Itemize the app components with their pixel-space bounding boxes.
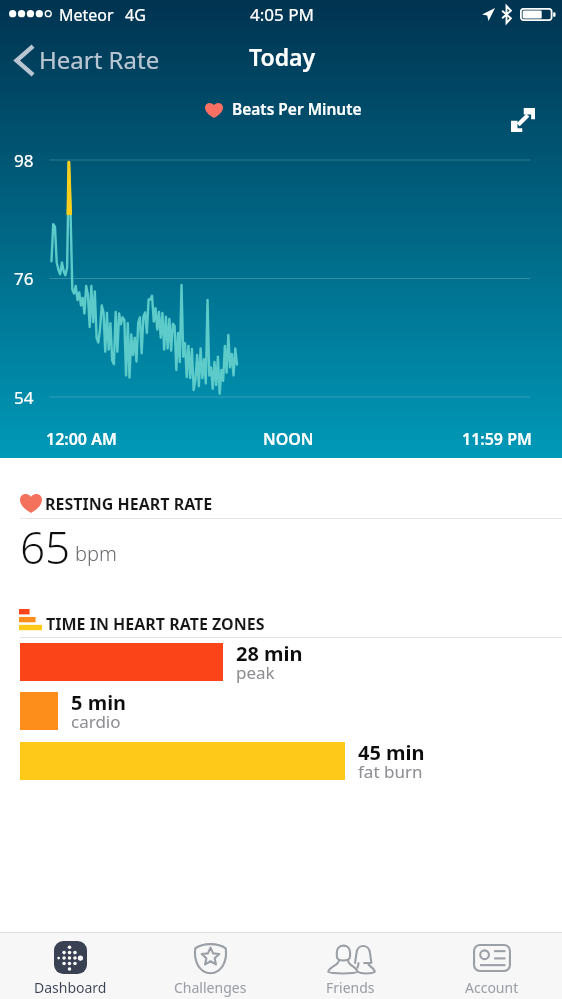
staticText: Today — [249, 41, 316, 72]
button[interactable]: Heart Rate — [6, 40, 170, 81]
staticText: Meteor — [59, 4, 114, 26]
staticText: 11:59 PM — [462, 428, 532, 450]
staticText: 4G — [125, 4, 146, 26]
button[interactable]: Challenges — [140, 933, 280, 999]
button[interactable]: 28 min — [0, 643, 562, 681]
staticText: fat burn — [358, 760, 423, 783]
staticText: 54 — [14, 386, 34, 409]
staticText: 98 — [14, 149, 34, 172]
button[interactable]: 5 min — [0, 692, 562, 730]
staticText: cardio — [71, 710, 121, 733]
staticText: peak — [236, 661, 275, 684]
staticText: Account — [465, 978, 519, 997]
staticText: TIME IN HEART RATE ZONES — [46, 613, 265, 635]
staticText: 45 min — [358, 739, 425, 766]
button[interactable]: Friends — [280, 933, 421, 999]
staticText: 76 — [14, 267, 34, 290]
staticText: bpm — [75, 540, 117, 567]
staticText: Friends — [326, 978, 375, 997]
staticText: RESTING HEART RATE — [45, 493, 213, 515]
staticText: 28 min — [236, 640, 303, 667]
staticText: NOON — [263, 428, 314, 450]
staticText: Heart Rate — [39, 43, 160, 76]
staticText: 5 min — [71, 689, 127, 716]
staticText: 65 — [20, 517, 71, 577]
button[interactable]: 45 min — [0, 742, 562, 780]
staticText: Challenges — [174, 978, 247, 997]
button[interactable]: Dashboard — [0, 933, 140, 999]
staticText: Beats Per Minute — [232, 98, 362, 119]
button[interactable]: Account — [421, 933, 562, 999]
staticText: Dashboard — [34, 978, 107, 997]
staticText: 4:05 PM — [250, 3, 314, 26]
staticText: 12:00 AM — [46, 428, 117, 450]
button[interactable]: Expand chart — [500, 97, 545, 142]
